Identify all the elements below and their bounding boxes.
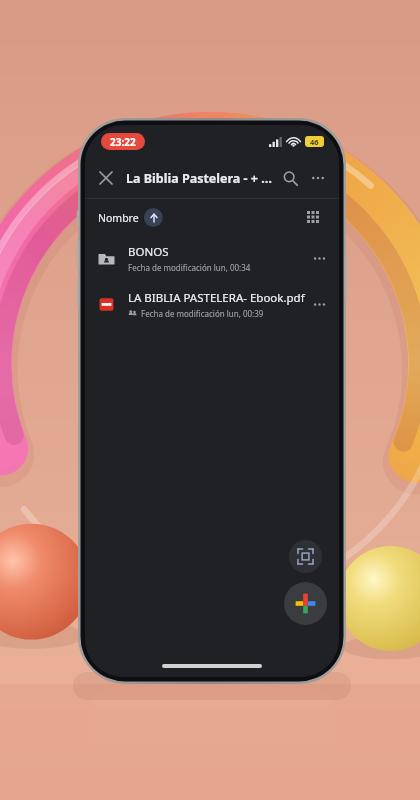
staticText: 23:22 [110, 135, 136, 149]
staticText: Fecha de modificación lun, 00:34 [128, 262, 251, 273]
staticText: 46 [310, 137, 319, 147]
staticText: BONOS [128, 244, 169, 260]
staticText: Fecha de modificación lun, 00:39 [141, 308, 264, 319]
button[interactable]: BONOS [85, 235, 339, 281]
button[interactable]: Buscar [276, 164, 304, 192]
staticText: La Biblia Pastelera - + 6 B… [126, 170, 276, 187]
staticText: Nombre [98, 211, 139, 225]
button[interactable]: Vista de cuadrícula [300, 204, 326, 230]
button[interactable]: Crear nuevo [284, 582, 327, 625]
button[interactable]: Más acciones [306, 245, 332, 271]
button[interactable]: Nombre [98, 208, 163, 227]
button[interactable]: Cerrar [92, 164, 120, 192]
staticText: LA BIBLIA PASTELERA- Ebook.pdf [128, 290, 305, 306]
button[interactable]: Escanear documento [289, 540, 322, 573]
button[interactable]: Más acciones [306, 291, 332, 317]
button[interactable]: Más opciones [304, 164, 332, 192]
button[interactable]: LA BIBLIA PASTELERA- Ebook.pdf [85, 281, 339, 327]
